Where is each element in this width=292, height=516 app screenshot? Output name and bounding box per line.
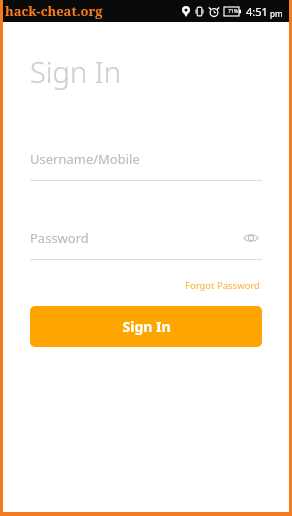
staticText: Password (30, 229, 89, 247)
staticText: 71% (228, 8, 238, 15)
staticText: Sign In (122, 317, 171, 336)
button[interactable]: Sign In (30, 306, 262, 347)
staticText: hack-cheat.org (5, 2, 103, 20)
staticText: Sign In (30, 52, 122, 91)
button[interactable]: Show password (240, 227, 262, 249)
staticText: Forgot Password (185, 279, 260, 292)
staticText: pm (270, 8, 283, 19)
button[interactable]: Forgot Password (183, 277, 262, 294)
staticText: 4:51 (246, 4, 268, 19)
button[interactable]: Password (30, 229, 240, 247)
staticText: Username/Mobile (30, 150, 140, 168)
button[interactable]: Username/Mobile (30, 146, 262, 181)
